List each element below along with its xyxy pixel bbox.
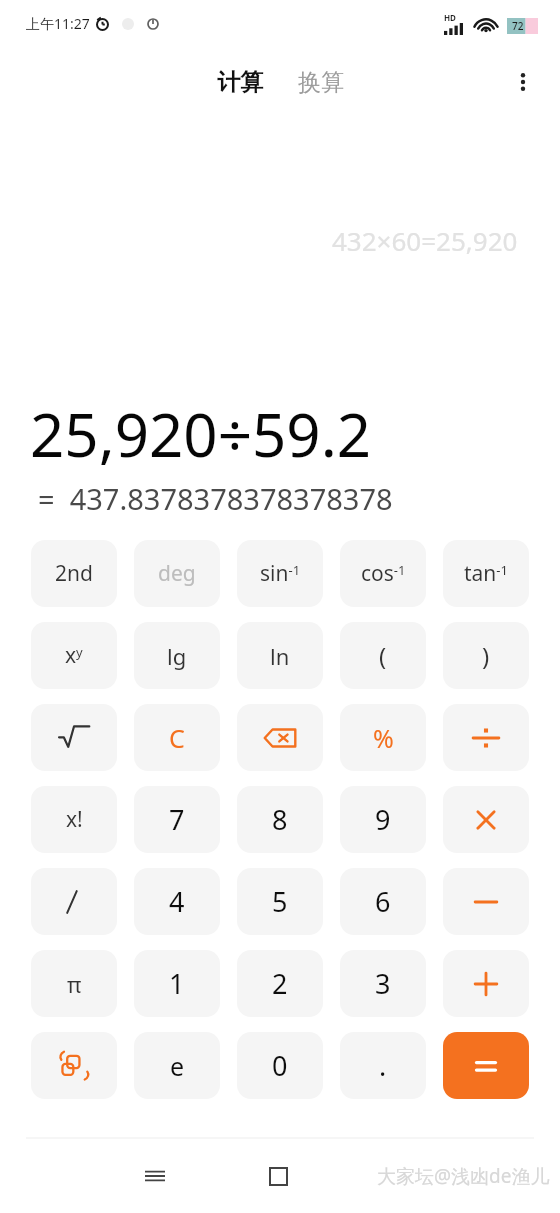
staticText: π: [67, 969, 82, 999]
staticText: 2: [272, 965, 288, 1002]
staticText: xy: [65, 641, 83, 670]
button[interactable]: Minus: [443, 868, 529, 935]
staticText: 72: [512, 19, 524, 33]
staticText: 8: [272, 801, 288, 838]
button[interactable]: 9: [340, 786, 426, 853]
button[interactable]: 4: [134, 868, 220, 935]
button[interactable]: (: [340, 622, 426, 689]
button[interactable]: 3: [340, 950, 426, 1017]
staticText: 计算: [217, 68, 263, 97]
staticText: 7: [169, 801, 185, 838]
button[interactable]: 0: [237, 1032, 323, 1099]
button[interactable]: π: [31, 950, 117, 1017]
button[interactable]: 换算: [292, 64, 350, 101]
staticText: 6: [375, 883, 391, 920]
staticText: deg: [158, 559, 196, 588]
button[interactable]: Divide: [443, 704, 529, 771]
button[interactable]: Plus: [443, 950, 529, 1017]
button[interactable]: 2nd: [31, 540, 117, 607]
button[interactable]: e: [134, 1032, 220, 1099]
button[interactable]: C: [134, 704, 220, 771]
button[interactable]: lg: [134, 622, 220, 689]
button[interactable]: History: [31, 1032, 117, 1099]
staticText: 4: [169, 883, 185, 920]
button[interactable]: Multiply: [443, 786, 529, 853]
staticText: 25,920÷59.2: [30, 393, 372, 475]
staticText: cos-1: [361, 559, 406, 588]
staticText: 1: [169, 965, 185, 1002]
staticText: 0: [272, 1047, 288, 1084]
staticText: C: [169, 721, 185, 755]
staticText: 5: [272, 883, 288, 920]
staticText: HD: [444, 12, 456, 23]
staticText: x!: [66, 805, 83, 834]
button[interactable]: ): [443, 622, 529, 689]
staticText: e: [170, 1049, 185, 1083]
button[interactable]: ln: [237, 622, 323, 689]
button[interactable]: 5: [237, 868, 323, 935]
staticText: 上午11:27: [26, 14, 90, 33]
button[interactable]: One over x: [31, 868, 117, 935]
staticText: 2nd: [55, 559, 93, 588]
staticText: 9: [375, 801, 391, 838]
staticText: 换算: [298, 68, 344, 97]
staticText: 3: [375, 965, 391, 1002]
button[interactable]: 1: [134, 950, 220, 1017]
staticText: = 437.8378378378378378: [38, 479, 393, 518]
button[interactable]: 8: [237, 786, 323, 853]
staticText: 432×60=25,920: [332, 223, 518, 258]
button[interactable]: %: [340, 704, 426, 771]
staticText: 大家坛@浅凼de渔儿: [377, 1163, 550, 1189]
button[interactable]: x!: [31, 786, 117, 853]
button[interactable]: Square root: [31, 704, 117, 771]
button[interactable]: deg: [134, 540, 220, 607]
button[interactable]: sin-1: [237, 540, 323, 607]
button[interactable]: Recents: [129, 1150, 181, 1202]
button[interactable]: Backspace: [237, 704, 323, 771]
button[interactable]: More options: [500, 59, 546, 105]
staticText: tan-1: [464, 559, 508, 588]
button[interactable]: Home: [252, 1150, 304, 1202]
staticText: (: [379, 639, 387, 672]
button[interactable]: Equals: [443, 1032, 529, 1099]
button[interactable]: 6: [340, 868, 426, 935]
staticText: sin-1: [260, 559, 301, 588]
button[interactable]: 7: [134, 786, 220, 853]
button[interactable]: 2: [237, 950, 323, 1017]
button[interactable]: tan-1: [443, 540, 529, 607]
staticText: lg: [167, 641, 187, 671]
staticText: ln: [270, 641, 290, 671]
button[interactable]: xy: [31, 622, 117, 689]
button[interactable]: 计算: [211, 64, 269, 101]
staticText: %: [373, 721, 394, 755]
button[interactable]: cos-1: [340, 540, 426, 607]
staticText: .: [379, 1047, 387, 1084]
button[interactable]: .: [340, 1032, 426, 1099]
staticText: ): [482, 639, 490, 672]
